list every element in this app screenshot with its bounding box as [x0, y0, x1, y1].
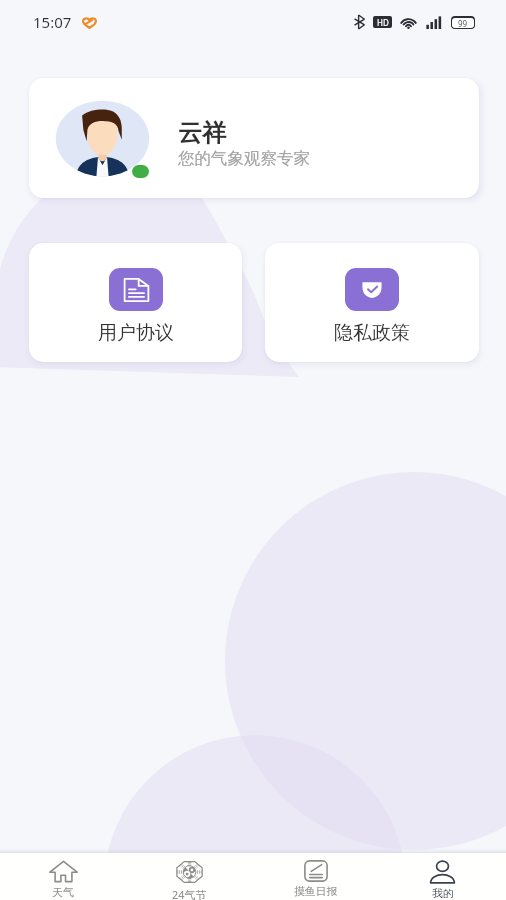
staticText: 摸鱼日报	[294, 885, 338, 899]
staticText: HD	[377, 17, 389, 28]
button[interactable]: 云祥	[29, 78, 479, 198]
staticText: 我的	[432, 887, 454, 900]
staticText: 天气	[52, 886, 74, 900]
staticText: 15:07	[33, 12, 72, 32]
staticText: 云祥	[178, 118, 226, 148]
button[interactable]: 隐私政策	[265, 243, 479, 362]
button[interactable]: 用户协议	[29, 243, 242, 362]
staticText: 99	[458, 18, 468, 28]
staticText: 用户协议	[98, 321, 174, 345]
button[interactable]: 24气节	[126, 853, 252, 900]
button[interactable]: 天气	[0, 853, 126, 900]
button[interactable]: 摸鱼日报	[252, 853, 379, 900]
button[interactable]: 我的	[379, 853, 506, 900]
staticText: 您的气象观察专家	[178, 148, 310, 169]
staticText: 24气节	[172, 887, 206, 900]
staticText: 隐私政策	[334, 321, 410, 345]
